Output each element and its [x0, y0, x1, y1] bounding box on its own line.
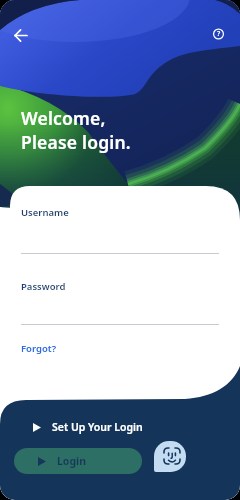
staticText: Login — [57, 454, 87, 468]
button[interactable]: Password — [21, 280, 219, 325]
staticText: ? — [217, 29, 221, 39]
button[interactable]: ? — [208, 24, 229, 44]
staticText: Forgot? — [21, 342, 57, 355]
staticText: Please login. — [21, 130, 131, 154]
button[interactable]: Login — [14, 448, 142, 474]
button[interactable]: Set Up Your Login — [33, 414, 240, 440]
staticText: Set Up Your Login — [52, 420, 143, 434]
button[interactable] — [154, 441, 186, 472]
button[interactable]: Username — [21, 206, 219, 254]
staticText: Username — [21, 206, 69, 219]
staticText: Welcome, — [21, 106, 106, 130]
button[interactable]: Forgot? — [21, 342, 57, 355]
button[interactable] — [8, 22, 34, 48]
staticText: Password — [21, 280, 66, 293]
